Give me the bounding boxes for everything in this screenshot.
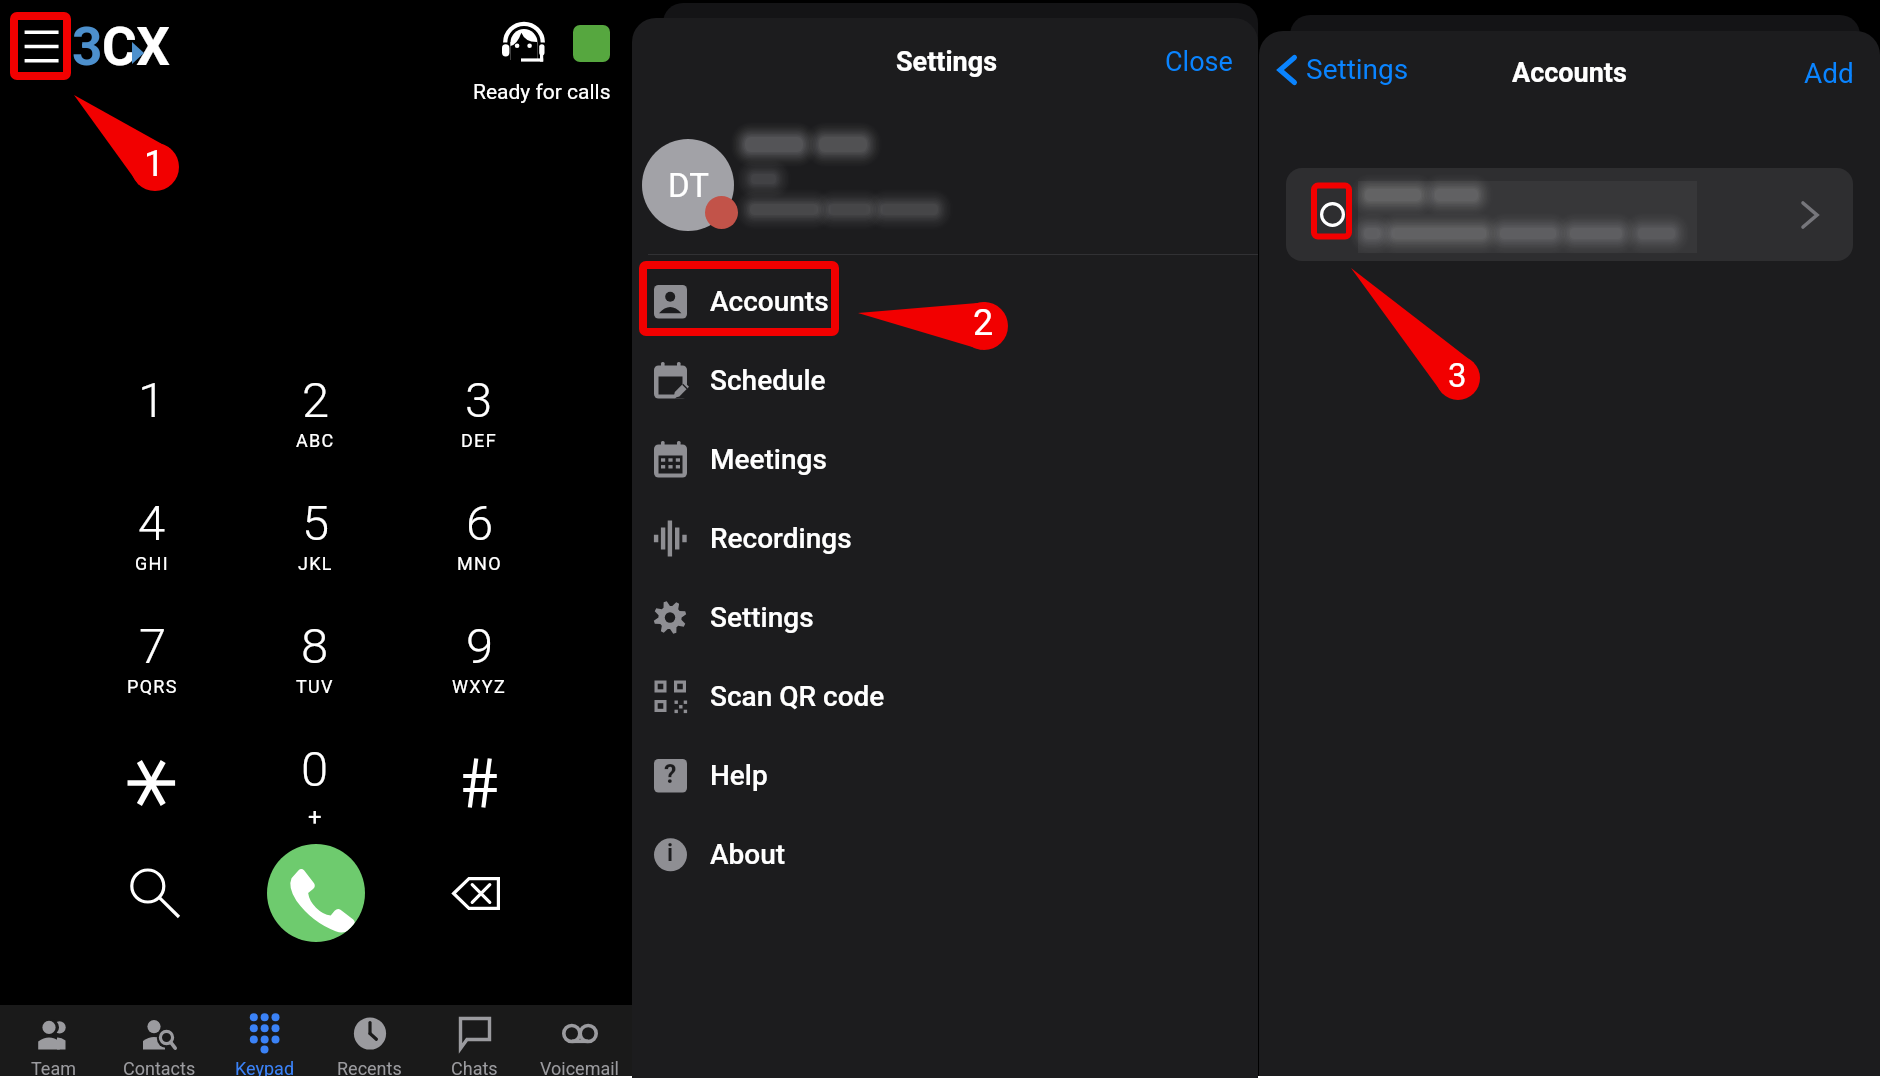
staticText: 4 bbox=[138, 495, 166, 552]
staticText: 8 bbox=[301, 618, 329, 675]
staticText: 0 bbox=[301, 741, 329, 798]
button[interactable]: 6 bbox=[419, 495, 539, 595]
staticText: Recents bbox=[337, 1058, 402, 1076]
staticText: Close bbox=[1165, 46, 1233, 78]
staticText: ABC bbox=[296, 430, 335, 451]
staticText: TUV bbox=[296, 676, 334, 697]
staticText: GHI bbox=[135, 553, 169, 574]
button[interactable]: 0 bbox=[255, 741, 375, 841]
button[interactable]: Agent status bbox=[498, 18, 546, 64]
staticText: Accounts bbox=[710, 285, 829, 318]
staticText: Schedule bbox=[710, 364, 826, 397]
button[interactable]: Recordings bbox=[632, 499, 1258, 577]
button[interactable]: i bbox=[632, 815, 1258, 893]
staticText: Voicemail bbox=[540, 1058, 619, 1076]
button[interactable]: Meetings bbox=[632, 420, 1258, 498]
staticText: ? bbox=[664, 760, 677, 789]
staticText: Meetings bbox=[710, 443, 827, 476]
button[interactable]: Star bbox=[111, 743, 191, 823]
button[interactable]: Search bbox=[115, 855, 191, 931]
button[interactable]: Settings bbox=[632, 578, 1258, 656]
button[interactable]: Schedule bbox=[632, 341, 1258, 419]
button[interactable]: 1 bbox=[92, 372, 212, 472]
button[interactable]: Call bbox=[267, 844, 365, 942]
button[interactable]: Menu bbox=[19, 21, 62, 72]
staticText: DT bbox=[668, 166, 709, 205]
staticText: Add bbox=[1804, 57, 1854, 90]
button[interactable]: Add bbox=[1804, 57, 1854, 90]
button[interactable]: Hash bbox=[439, 743, 519, 823]
button[interactable]: Team bbox=[0, 1005, 106, 1076]
staticText: About bbox=[710, 838, 786, 871]
button[interactable]: 9 bbox=[419, 618, 539, 718]
button[interactable]: 4 bbox=[92, 495, 212, 595]
button[interactable] bbox=[1286, 168, 1853, 261]
staticText: 3 bbox=[72, 16, 102, 78]
staticText: 3 bbox=[1448, 356, 1467, 395]
button[interactable]: Recents bbox=[317, 1005, 422, 1076]
staticText: WXYZ bbox=[452, 676, 507, 697]
staticText: Contacts bbox=[123, 1058, 196, 1076]
staticText: Settings bbox=[1306, 53, 1409, 86]
button[interactable]: Voicemail bbox=[527, 1005, 632, 1076]
staticText: 6 bbox=[466, 495, 494, 552]
staticText: 3 bbox=[465, 372, 493, 429]
staticText: 7 bbox=[139, 618, 167, 675]
staticText: JKL bbox=[298, 553, 333, 574]
staticText: 9 bbox=[466, 618, 494, 675]
staticText: 2 bbox=[973, 302, 994, 344]
button[interactable]: Accounts bbox=[632, 262, 1258, 340]
button[interactable]: Keypad bbox=[212, 1005, 317, 1076]
staticText: Chats bbox=[451, 1058, 498, 1076]
button[interactable]: 8 bbox=[255, 618, 375, 718]
staticText: DEF bbox=[461, 430, 497, 451]
button[interactable]: 7 bbox=[92, 618, 212, 718]
button[interactable]: Backspace bbox=[444, 869, 508, 919]
staticText: Help bbox=[710, 759, 768, 792]
staticText: Settings bbox=[896, 46, 998, 78]
button[interactable]: 5 bbox=[255, 495, 375, 595]
staticText: MNO bbox=[457, 553, 502, 574]
staticText: i bbox=[667, 840, 674, 867]
button[interactable]: Scan QR code bbox=[632, 657, 1258, 735]
staticText: 5 bbox=[302, 495, 330, 552]
staticText: 1 bbox=[144, 143, 165, 185]
staticText: 1 bbox=[138, 372, 166, 429]
staticText: 2 bbox=[302, 372, 330, 429]
staticText: Ready for calls bbox=[473, 80, 611, 105]
staticText: Scan QR code bbox=[710, 680, 885, 713]
button[interactable]: Back to Settings bbox=[1276, 53, 1409, 86]
staticText: Team bbox=[31, 1058, 76, 1076]
staticText: PQRS bbox=[127, 676, 178, 697]
button[interactable]: Contacts bbox=[106, 1005, 212, 1076]
button[interactable]: Close bbox=[1165, 46, 1233, 78]
staticText: Settings bbox=[710, 601, 814, 634]
button[interactable]: Status bbox=[573, 25, 610, 62]
button[interactable]: Chats bbox=[422, 1005, 527, 1076]
staticText: Accounts bbox=[1512, 57, 1627, 89]
staticText: Keypad bbox=[235, 1058, 295, 1076]
staticText: CX bbox=[102, 16, 170, 78]
button[interactable]: 2 bbox=[255, 372, 375, 472]
button[interactable]: 3 bbox=[419, 372, 539, 472]
staticText: Recordings bbox=[710, 522, 852, 555]
staticText: + bbox=[308, 803, 323, 831]
button[interactable]: ? bbox=[632, 736, 1258, 814]
